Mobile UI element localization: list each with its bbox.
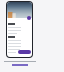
button[interactable] bbox=[18, 50, 31, 54]
button[interactable]: Play bbox=[27, 16, 31, 20]
